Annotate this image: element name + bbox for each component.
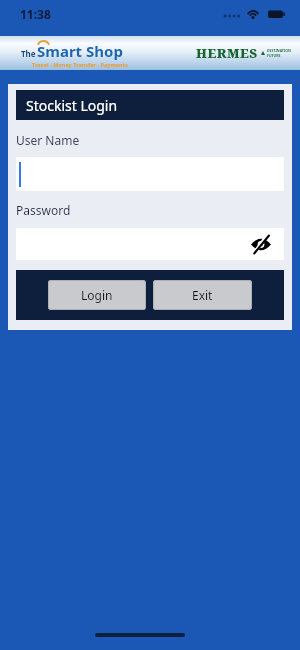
staticText: FUTURE <box>267 53 281 58</box>
staticText: User Name <box>16 132 80 148</box>
staticText: 11:38 <box>20 6 51 22</box>
staticText: DESTINATION <box>267 48 291 53</box>
button[interactable] <box>16 157 284 191</box>
staticText: Travel - Money Transfer - Payments <box>32 61 128 68</box>
staticText: HERMES <box>196 44 258 62</box>
staticText: Smart Shop <box>37 41 123 61</box>
button[interactable] <box>16 228 284 260</box>
button[interactable]: Exit <box>153 280 252 310</box>
staticText: Login <box>81 287 113 303</box>
staticText: The <box>21 48 36 59</box>
staticText: Exit <box>192 287 213 303</box>
button[interactable]: Login <box>48 280 146 310</box>
staticText: Password <box>16 202 71 218</box>
staticText: Stockist Login <box>26 96 118 115</box>
